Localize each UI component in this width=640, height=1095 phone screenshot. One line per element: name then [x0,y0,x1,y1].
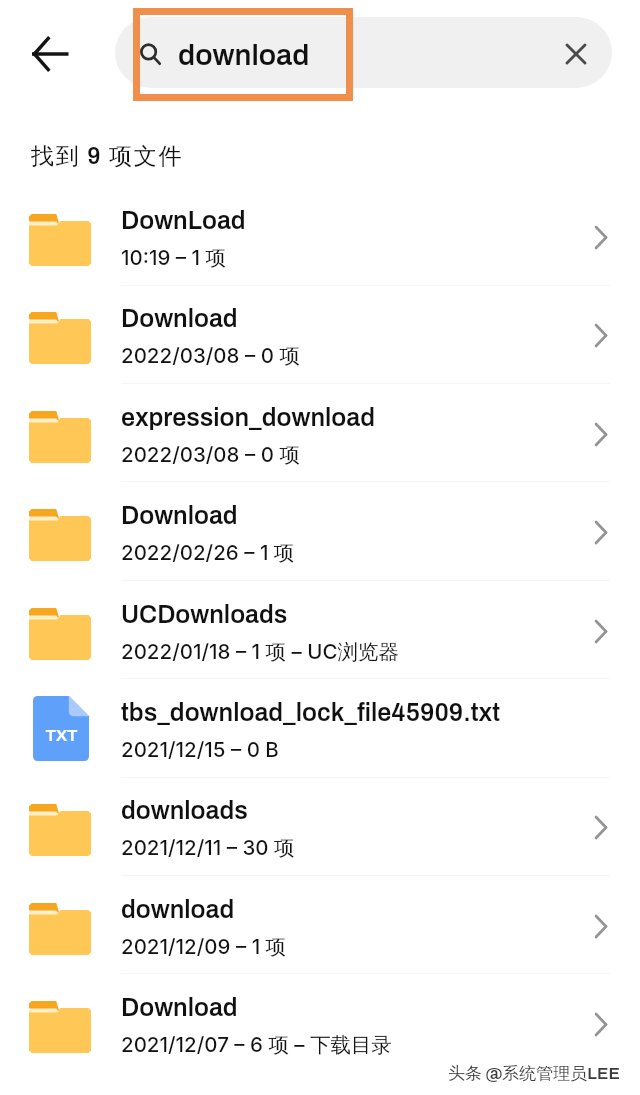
button[interactable]: expression_download [0,384,640,482]
staticText: tbs_download_lock_file45909.txt [121,699,601,726]
staticText: 找到 9 项文件 [31,142,184,171]
staticText: download [121,896,601,923]
staticText: UCDownloads [121,601,601,628]
staticText: 2022/02/26 – 1 项 [121,540,601,566]
button[interactable]: Download [0,285,640,383]
staticText: Download [121,305,601,332]
staticText: 2021/12/11 – 30 项 [121,835,601,861]
staticText: Download [121,994,601,1021]
staticText: DownLoad [121,207,601,234]
button[interactable]: DownLoad [0,187,640,285]
staticText: Download [121,502,601,529]
staticText: 10:19 – 1 项 [121,245,601,271]
staticText: 头条 @系统管理员LEE [448,1063,620,1084]
staticText: 2022/03/08 – 0 项 [121,442,601,468]
staticText: 2021/12/09 – 1 项 [121,934,601,960]
button[interactable]: downloads [0,777,640,875]
staticText: 2022/01/18 – 1 项 – UC浏览器 [121,639,601,665]
button[interactable]: Back [15,18,85,88]
staticText: 2021/12/07 – 6 项 – 下载目录 [121,1032,601,1058]
button[interactable]: Download [0,482,640,580]
button[interactable]: Download [0,974,640,1072]
button[interactable]: Clear search [551,29,601,79]
staticText: 2022/03/08 – 0 项 [121,343,601,369]
staticText: download [178,40,310,72]
button[interactable]: TXT [0,679,640,777]
button[interactable]: UCDownloads [0,581,640,679]
staticText: TXT [45,726,78,744]
button[interactable]: download [115,17,612,88]
button[interactable]: download [0,876,640,974]
staticText: expression_download [121,404,601,431]
staticText: 2021/12/15 – 0 B [121,737,601,762]
staticText: downloads [121,797,601,824]
